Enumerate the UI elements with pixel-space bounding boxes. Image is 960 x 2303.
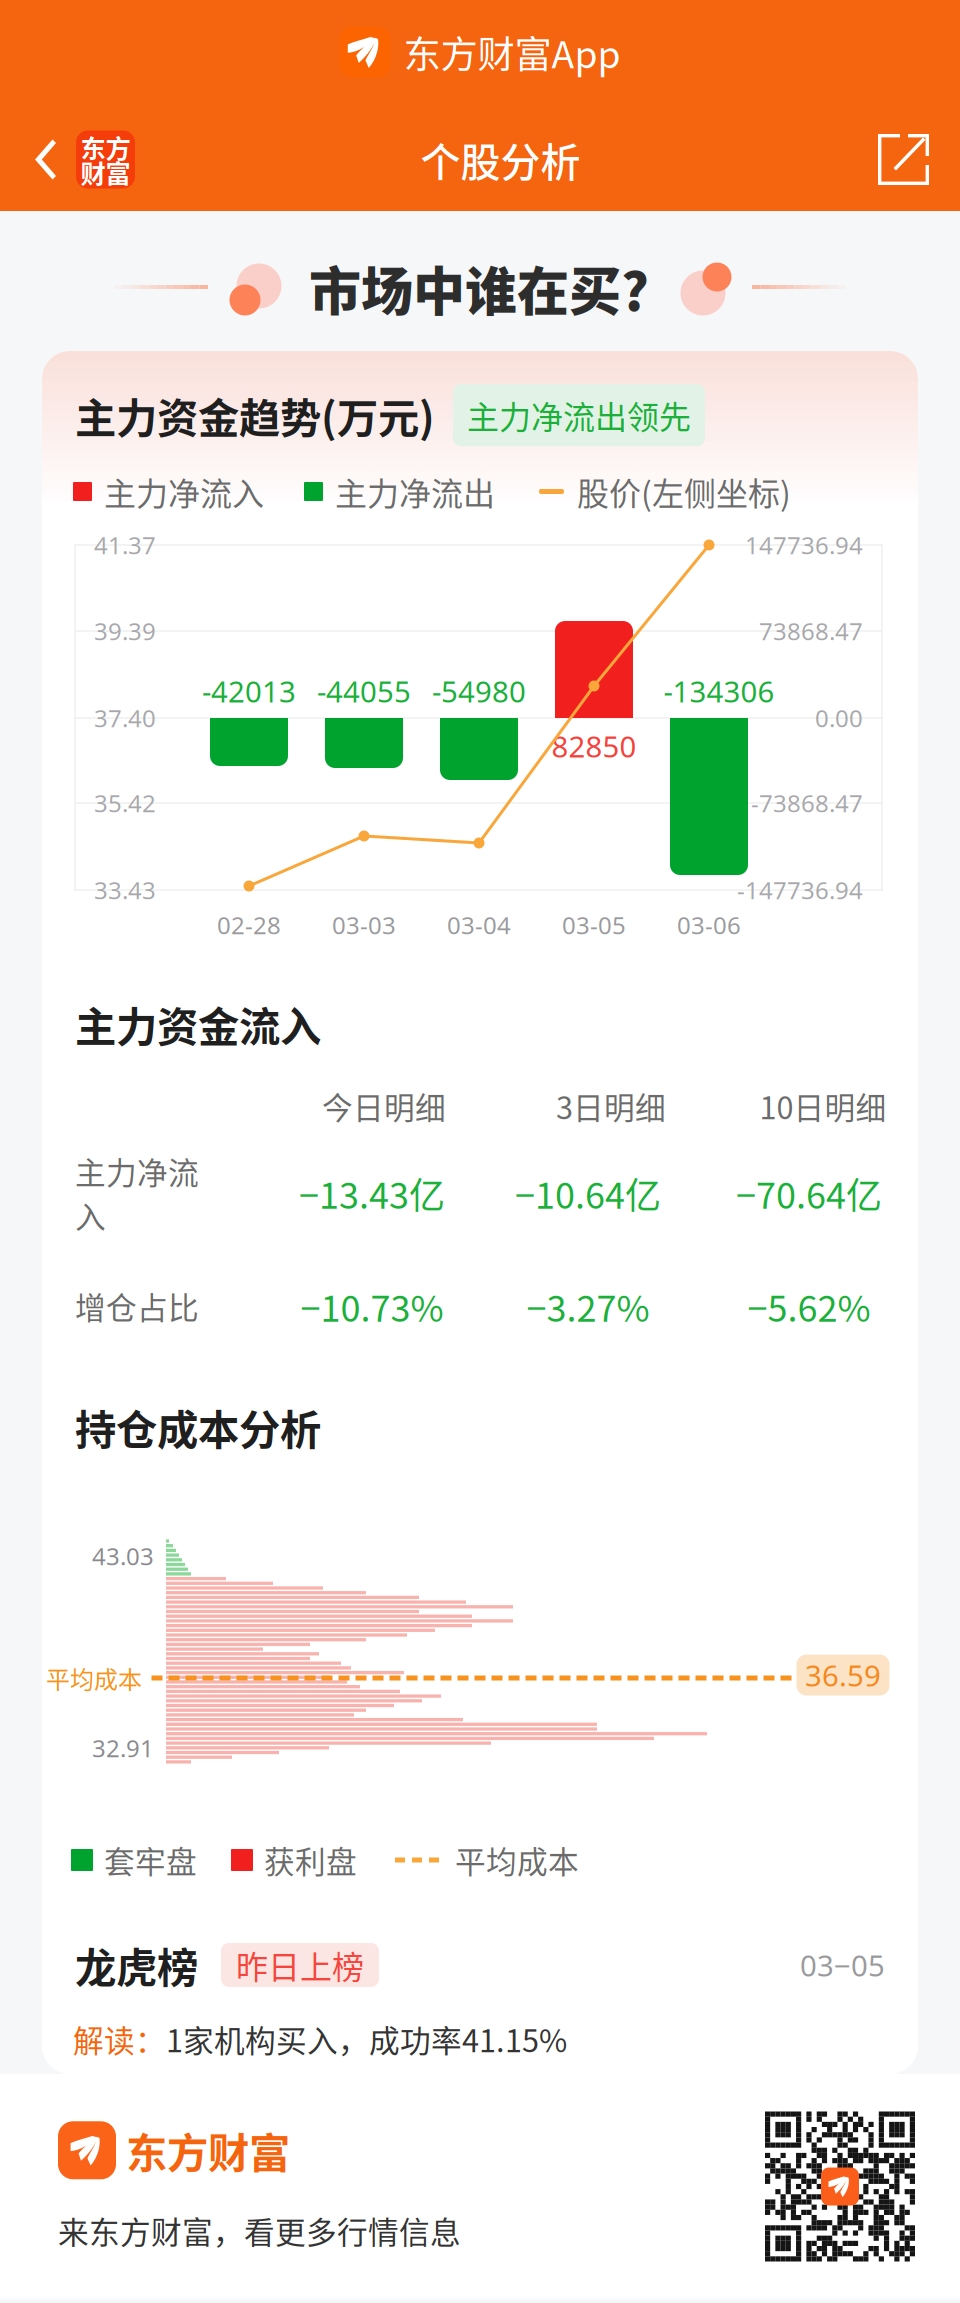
staticText: -42013 [202, 671, 296, 711]
staticText: −70.64亿 [736, 1167, 882, 1219]
staticText: 82850 [551, 726, 636, 766]
staticText: 获利盘 [264, 1838, 357, 1882]
staticText: -73868.47 [751, 787, 863, 819]
staticText: 增仓占比 [75, 1284, 199, 1328]
staticText: 龙虎榜 [75, 1935, 198, 1995]
staticText: 43.03 [92, 1540, 154, 1572]
staticText: 147736.94 [745, 529, 863, 561]
staticText: 东方 [80, 129, 130, 165]
staticText: 今日明细 [322, 1084, 446, 1128]
staticText: 41.37 [94, 529, 156, 561]
staticText: -54980 [432, 671, 526, 711]
staticText: 主力净流出 [335, 468, 495, 515]
staticText: 东方财富 [126, 2120, 290, 2180]
staticText: 平均成本 [46, 1661, 142, 1695]
staticText: 0.00 [815, 702, 863, 734]
staticText: 33.43 [94, 874, 156, 906]
staticText: 持仓成本分析 [75, 1397, 321, 1457]
staticText: 10日明细 [759, 1084, 886, 1128]
staticText: −3.27% [526, 1280, 649, 1332]
staticText: 03-05 [562, 909, 626, 941]
staticText: 平均成本 [455, 1838, 579, 1882]
staticText: 32.91 [92, 1732, 154, 1764]
staticText: 主力净流 入 [75, 1149, 199, 1237]
staticText: 39.39 [94, 615, 156, 647]
staticText: 套牢盘 [104, 1838, 197, 1882]
staticText: 主力净流入 [104, 468, 264, 515]
staticText: 02-28 [217, 909, 281, 941]
staticText: -147736.94 [737, 874, 863, 906]
staticText: 东方财富App [403, 25, 620, 79]
staticText: 来东方财富，看更多行情信息 [58, 2208, 461, 2253]
staticText: 个股分析 [420, 130, 580, 188]
staticText: 股价(左侧坐标) [577, 468, 791, 515]
staticText: 03-04 [447, 909, 511, 941]
staticText: 03-06 [677, 909, 741, 941]
staticText: 3日明细 [556, 1084, 666, 1128]
staticText: 36.59 [805, 1655, 881, 1695]
staticText: 昨日上榜 [236, 1942, 364, 1988]
staticText: 主力净流出领先 [467, 392, 691, 438]
staticText: 37.40 [94, 702, 156, 734]
staticText: 解读： [73, 2017, 166, 2061]
staticText: 主力资金流入 [75, 994, 321, 1054]
staticText: −5.62% [747, 1280, 870, 1332]
staticText: 主力资金趋势(万元) [75, 385, 435, 445]
staticText: 03-03 [332, 909, 396, 941]
button[interactable]: Share [854, 108, 960, 211]
staticText: −13.43亿 [299, 1167, 445, 1219]
staticText: -44055 [317, 671, 411, 711]
staticText: −10.73% [300, 1280, 443, 1332]
staticText: 73868.47 [759, 615, 863, 647]
staticText: -134306 [663, 671, 774, 711]
staticText: 1家机构买入，成功率41.15% [166, 2017, 567, 2061]
button[interactable]: Back [0, 108, 147, 211]
staticText: 03−05 [800, 1945, 885, 1985]
staticText: 财富 [80, 154, 130, 190]
staticText: 35.42 [94, 787, 156, 819]
staticText: 市场中谁在买? [309, 250, 649, 326]
staticText: −10.64亿 [515, 1167, 661, 1219]
